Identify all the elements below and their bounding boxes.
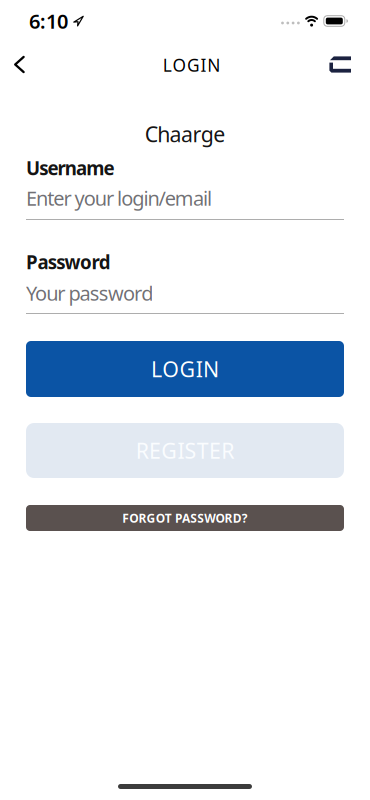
button[interactable]: FORGOT PASSWORD? <box>26 505 344 531</box>
button[interactable]: Back <box>0 44 25 85</box>
staticText: REGISTER <box>136 436 234 465</box>
staticText: 6:10 <box>29 8 68 34</box>
staticText: Chaarge <box>145 120 225 148</box>
staticText: Your password <box>26 280 153 306</box>
staticText: Password <box>26 250 111 274</box>
staticText: Username <box>26 156 114 180</box>
button[interactable]: LOGIN <box>26 341 344 397</box>
button[interactable]: Chaarge <box>329 44 370 85</box>
staticText: Enter your login/email <box>26 185 212 211</box>
staticText: LOGIN <box>163 53 220 76</box>
staticText: LOGIN <box>151 355 219 383</box>
button[interactable]: REGISTER <box>26 423 344 478</box>
staticText: FORGOT PASSWORD? <box>122 510 248 526</box>
